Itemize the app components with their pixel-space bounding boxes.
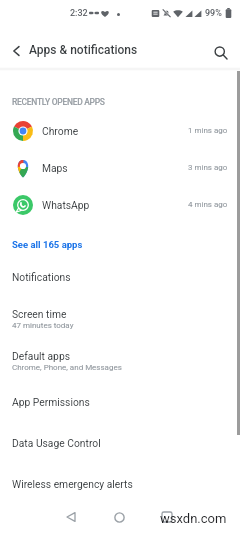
staticText: Screen time [12, 308, 67, 320]
staticText: See all 165 apps [12, 239, 83, 250]
staticText: 3 mins ago [188, 163, 228, 172]
staticText: Wireless emergency alerts [12, 478, 133, 490]
button[interactable]: Default apps [0, 341, 240, 381]
button[interactable]: Wireless emergency alerts [0, 463, 240, 504]
staticText: App Permissions [12, 396, 90, 408]
staticText: wsxdn.com [160, 511, 227, 526]
staticText: Default apps [12, 350, 70, 362]
button[interactable]: Maps [0, 149, 240, 186]
button[interactable]: Screen time [0, 297, 240, 341]
staticText: 47 minutes today [12, 321, 74, 330]
button[interactable]: Back [58, 504, 84, 530]
button[interactable]: App Permissions [0, 381, 240, 422]
button[interactable]: Notifications [0, 256, 240, 297]
staticText: Chrome, Phone, and Messages [12, 363, 122, 372]
button[interactable]: Data Usage Control [0, 422, 240, 463]
button[interactable]: Back [4, 38, 29, 63]
staticText: Notifications [12, 271, 71, 283]
button[interactable]: WhatsApp [0, 186, 240, 223]
staticText: 99% [205, 8, 222, 19]
staticText: 1 mins ago [188, 126, 228, 135]
staticText: 4 mins ago [188, 200, 228, 209]
staticText: RECENTLY OPENED APPS [12, 97, 105, 107]
staticText: 2:32 [70, 8, 88, 19]
button[interactable]: See all 165 apps [0, 232, 240, 256]
staticText: Apps & notifications [29, 43, 138, 57]
staticText: Maps [42, 162, 68, 174]
staticText: Chrome [42, 125, 79, 137]
staticText: WhatsApp [42, 199, 90, 211]
button[interactable]: Chrome [0, 112, 240, 149]
button[interactable]: Home [106, 504, 132, 530]
staticText: Data Usage Control [12, 437, 101, 449]
button[interactable]: Recent apps [154, 504, 180, 530]
button[interactable]: Search [208, 40, 233, 65]
